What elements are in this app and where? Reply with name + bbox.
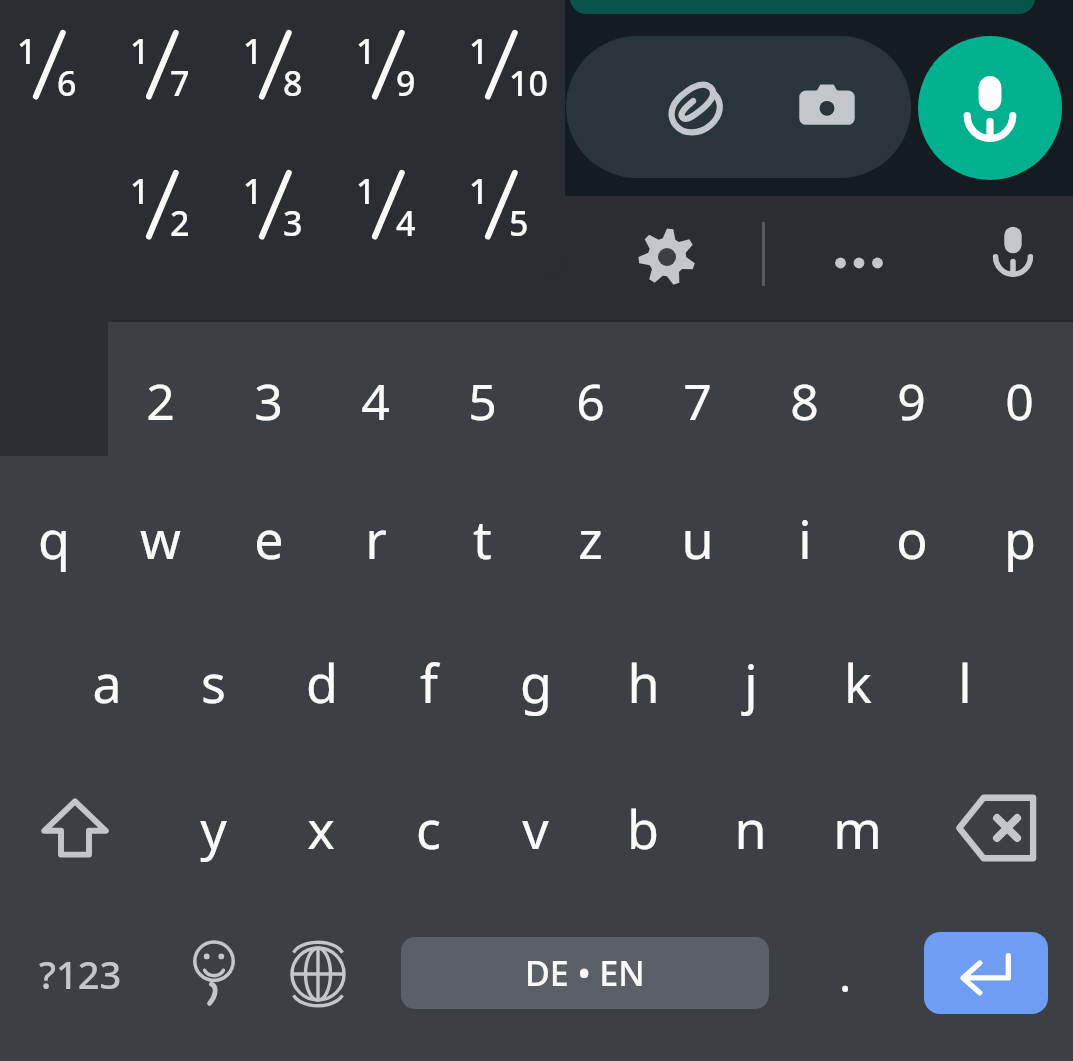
staticText: c: [416, 793, 441, 864]
staticText: b: [627, 793, 659, 864]
staticText: 9: [396, 60, 416, 106]
button[interactable]: 6: [537, 340, 644, 462]
staticText: 8: [283, 60, 303, 106]
staticText: n: [734, 793, 767, 864]
button[interactable]: k: [804, 620, 911, 744]
button[interactable]: Change language: [272, 915, 364, 1033]
button[interactable]: t: [429, 476, 536, 600]
staticText: 5: [509, 200, 529, 246]
staticText: h: [627, 647, 660, 718]
button[interactable]: 8: [751, 340, 858, 462]
button[interactable]: Attach: [664, 74, 730, 140]
button[interactable]: s: [160, 620, 267, 744]
staticText: 0: [1005, 367, 1034, 435]
staticText: q: [38, 503, 70, 574]
button[interactable]: Camera: [794, 74, 860, 140]
button[interactable]: Emoji and comma: [168, 915, 260, 1033]
button[interactable]: ?123: [0, 915, 160, 1033]
button[interactable]: 4: [322, 340, 429, 462]
button[interactable]: Voice input: [984, 222, 1042, 280]
staticText: 1: [243, 28, 263, 74]
staticText: 2: [170, 200, 190, 246]
button[interactable]: z: [537, 476, 644, 600]
button[interactable]: o: [858, 476, 965, 600]
button[interactable]: More options: [826, 230, 892, 296]
button[interactable]: 1: [339, 148, 452, 270]
staticText: g: [520, 647, 552, 718]
staticText: 6: [57, 60, 77, 106]
button[interactable]: Enter: [924, 932, 1048, 1014]
button[interactable]: w: [107, 476, 214, 600]
button[interactable]: 1: [113, 8, 226, 130]
button[interactable]: g: [482, 620, 589, 744]
button[interactable]: r: [322, 476, 429, 600]
button[interactable]: q: [0, 476, 107, 600]
button[interactable]: Record voice message: [918, 36, 1062, 180]
staticText: 2: [146, 367, 175, 435]
button[interactable]: 1: [113, 148, 226, 270]
staticText: 10: [509, 60, 548, 106]
staticText: 1: [356, 28, 376, 74]
staticText: 7: [683, 367, 712, 435]
button[interactable]: 1: [452, 8, 565, 130]
staticText: 5: [468, 367, 497, 435]
staticText: 4: [361, 367, 390, 435]
button[interactable]: 9: [858, 340, 965, 462]
staticText: 3: [254, 367, 283, 435]
button[interactable]: l: [911, 620, 1018, 744]
button[interactable]: 1: [226, 148, 339, 270]
button[interactable]: Settings: [636, 226, 698, 288]
button[interactable]: DE • EN: [401, 937, 769, 1009]
staticText: m: [833, 793, 882, 864]
button[interactable]: h: [590, 620, 697, 744]
button[interactable]: 5: [429, 340, 536, 462]
button[interactable]: 1: [0, 340, 107, 462]
button[interactable]: .: [790, 915, 900, 1033]
button[interactable]: 2: [107, 340, 214, 462]
button[interactable]: f: [375, 620, 482, 744]
staticText: 8: [790, 367, 819, 435]
staticText: 1: [17, 28, 37, 74]
button[interactable]: 1: [339, 8, 452, 130]
button[interactable]: i: [751, 476, 858, 600]
button[interactable]: v: [482, 766, 589, 890]
staticText: .: [839, 943, 852, 1006]
button[interactable]: Shift: [0, 766, 150, 890]
button[interactable]: j: [697, 620, 804, 744]
staticText: 1: [356, 168, 376, 214]
button[interactable]: 0: [966, 340, 1073, 462]
button[interactable]: p: [966, 476, 1073, 600]
button[interactable]: y: [160, 766, 267, 890]
button[interactable]: 1: [452, 148, 565, 270]
button[interactable]: b: [589, 766, 696, 890]
staticText: k: [844, 647, 872, 718]
button[interactable]: u: [644, 476, 751, 600]
button[interactable]: Backspace: [922, 766, 1072, 890]
staticText: 6: [576, 367, 605, 435]
staticText: z: [578, 503, 603, 574]
staticText: 1: [130, 168, 150, 214]
staticText: 7: [170, 60, 190, 106]
button[interactable]: n: [697, 766, 804, 890]
button[interactable]: 1: [0, 8, 113, 130]
button[interactable]: 7: [644, 340, 751, 462]
button[interactable]: d: [268, 620, 375, 744]
staticText: a: [92, 647, 122, 718]
button[interactable]: a: [53, 620, 160, 744]
button[interactable]: 1: [226, 8, 339, 130]
staticText: 9: [897, 367, 926, 435]
button[interactable]: c: [375, 766, 482, 890]
button[interactable]: x: [267, 766, 374, 890]
staticText: j: [744, 647, 758, 718]
button[interactable]: 3: [215, 340, 322, 462]
staticText: 1: [469, 28, 489, 74]
staticText: r: [365, 503, 387, 574]
button[interactable]: e: [215, 476, 322, 600]
staticText: 1: [469, 168, 489, 214]
staticText: e: [254, 503, 284, 574]
button[interactable]: Attach: [566, 36, 911, 178]
staticText: u: [681, 503, 714, 574]
button[interactable]: m: [804, 766, 911, 890]
